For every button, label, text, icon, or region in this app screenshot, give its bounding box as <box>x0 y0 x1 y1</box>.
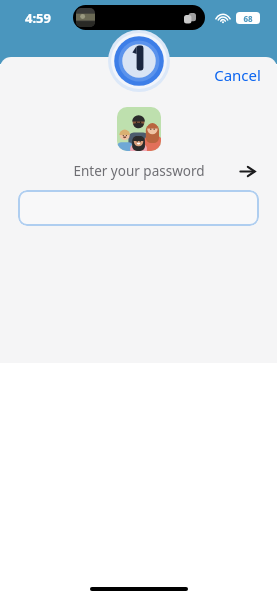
staticText: 68 <box>243 13 253 24</box>
staticText: Enter your password <box>73 162 205 180</box>
button[interactable]: Submit password <box>235 159 259 183</box>
staticText: 4:59 <box>25 9 51 27</box>
button[interactable]: Password field <box>18 190 259 226</box>
staticText: Cancel <box>214 65 261 85</box>
button[interactable]: Cancel <box>204 59 271 91</box>
